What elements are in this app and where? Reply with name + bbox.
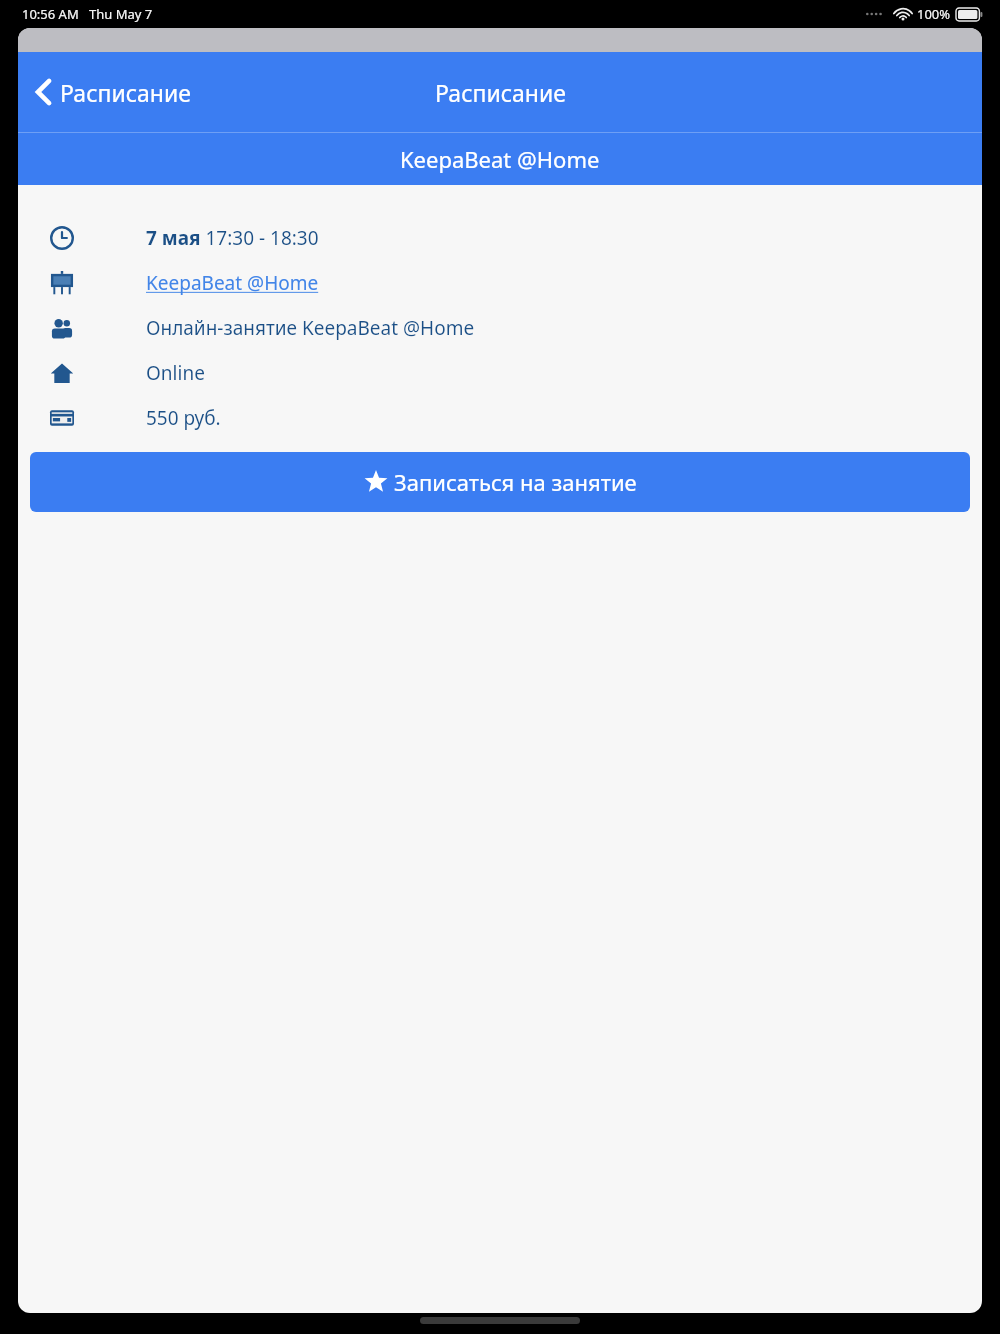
staticText: 7 мая 17:30 - 18:30 (146, 225, 319, 251)
button[interactable]: Записаться на занятие (30, 452, 970, 512)
staticText: Thu May 7 (89, 5, 153, 23)
button[interactable]: KeepaBeat @Home (146, 270, 319, 296)
staticText: Онлайн-занятие KeepaBeat @Home (146, 315, 475, 341)
staticText: KeepaBeat @Home (400, 144, 600, 174)
staticText: Расписание (435, 77, 566, 108)
staticText: Online (146, 360, 205, 386)
staticText: 100% (917, 5, 951, 23)
staticText: 550 руб. (146, 405, 221, 431)
button[interactable]: Расписание (18, 52, 205, 132)
staticText: Записаться на занятие (394, 467, 637, 497)
staticText: 10:56 AM (22, 5, 79, 23)
staticText: Расписание (60, 77, 191, 108)
